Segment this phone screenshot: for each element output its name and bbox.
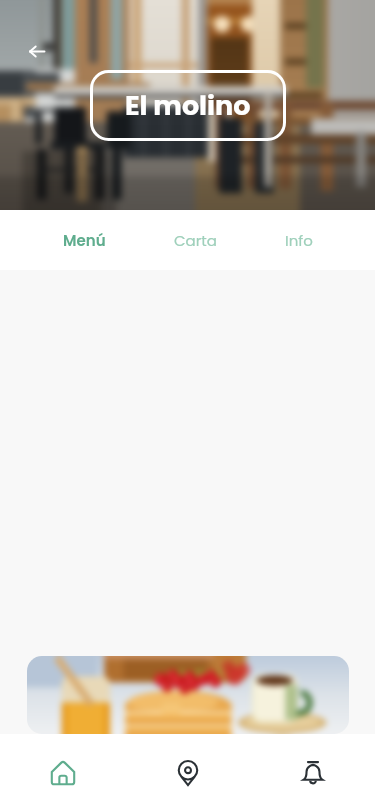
- button[interactable]: [27, 656, 349, 734]
- staticText: Info: [285, 230, 313, 251]
- button[interactable]: Places: [125, 734, 250, 812]
- button[interactable]: Carta: [174, 210, 217, 270]
- button[interactable]: Home: [0, 734, 125, 812]
- button[interactable]: Back: [21, 35, 53, 67]
- staticText: Menú: [63, 230, 106, 251]
- staticText: El molino: [125, 87, 251, 125]
- button[interactable]: Notifications: [250, 734, 375, 812]
- button[interactable]: Info: [285, 210, 313, 270]
- staticText: Carta: [174, 230, 217, 251]
- button[interactable]: Menú: [63, 210, 106, 270]
